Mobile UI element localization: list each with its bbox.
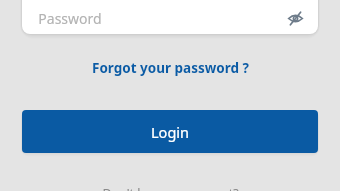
button[interactable]: Password: [22, 0, 318, 34]
button[interactable]: Show password: [279, 2, 311, 34]
staticText: Forgot your password ?: [92, 59, 249, 77]
button[interactable]: Login: [22, 110, 318, 153]
staticText: Don't have an account?: [102, 185, 239, 191]
button[interactable]: Forgot your password ?: [82, 56, 259, 80]
staticText: Password: [38, 9, 102, 28]
button[interactable]: Don't have an account?: [94, 185, 247, 191]
staticText: Login: [151, 122, 189, 142]
